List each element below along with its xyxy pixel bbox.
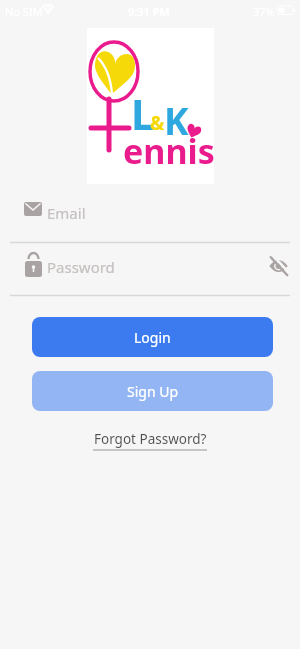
staticText: ennis xyxy=(123,128,215,174)
staticText: & xyxy=(150,110,165,136)
button[interactable]: Login xyxy=(32,317,273,357)
staticText: Email xyxy=(47,203,86,223)
button[interactable]: Sign Up xyxy=(32,371,273,411)
staticText: Sign Up xyxy=(127,382,179,401)
staticText: 9:31 PM xyxy=(128,4,170,19)
button[interactable]: Forgot Password? xyxy=(70,425,230,453)
staticText: No SIM xyxy=(5,4,43,19)
staticText: Forgot Password? xyxy=(94,430,207,448)
staticText: 37% xyxy=(253,4,275,19)
staticText: Password xyxy=(47,257,115,277)
staticText: Login xyxy=(134,328,171,347)
staticText: L xyxy=(131,85,155,142)
button[interactable]: Password xyxy=(10,251,290,296)
staticText: K xyxy=(164,95,189,145)
button[interactable]: Email xyxy=(10,198,290,243)
